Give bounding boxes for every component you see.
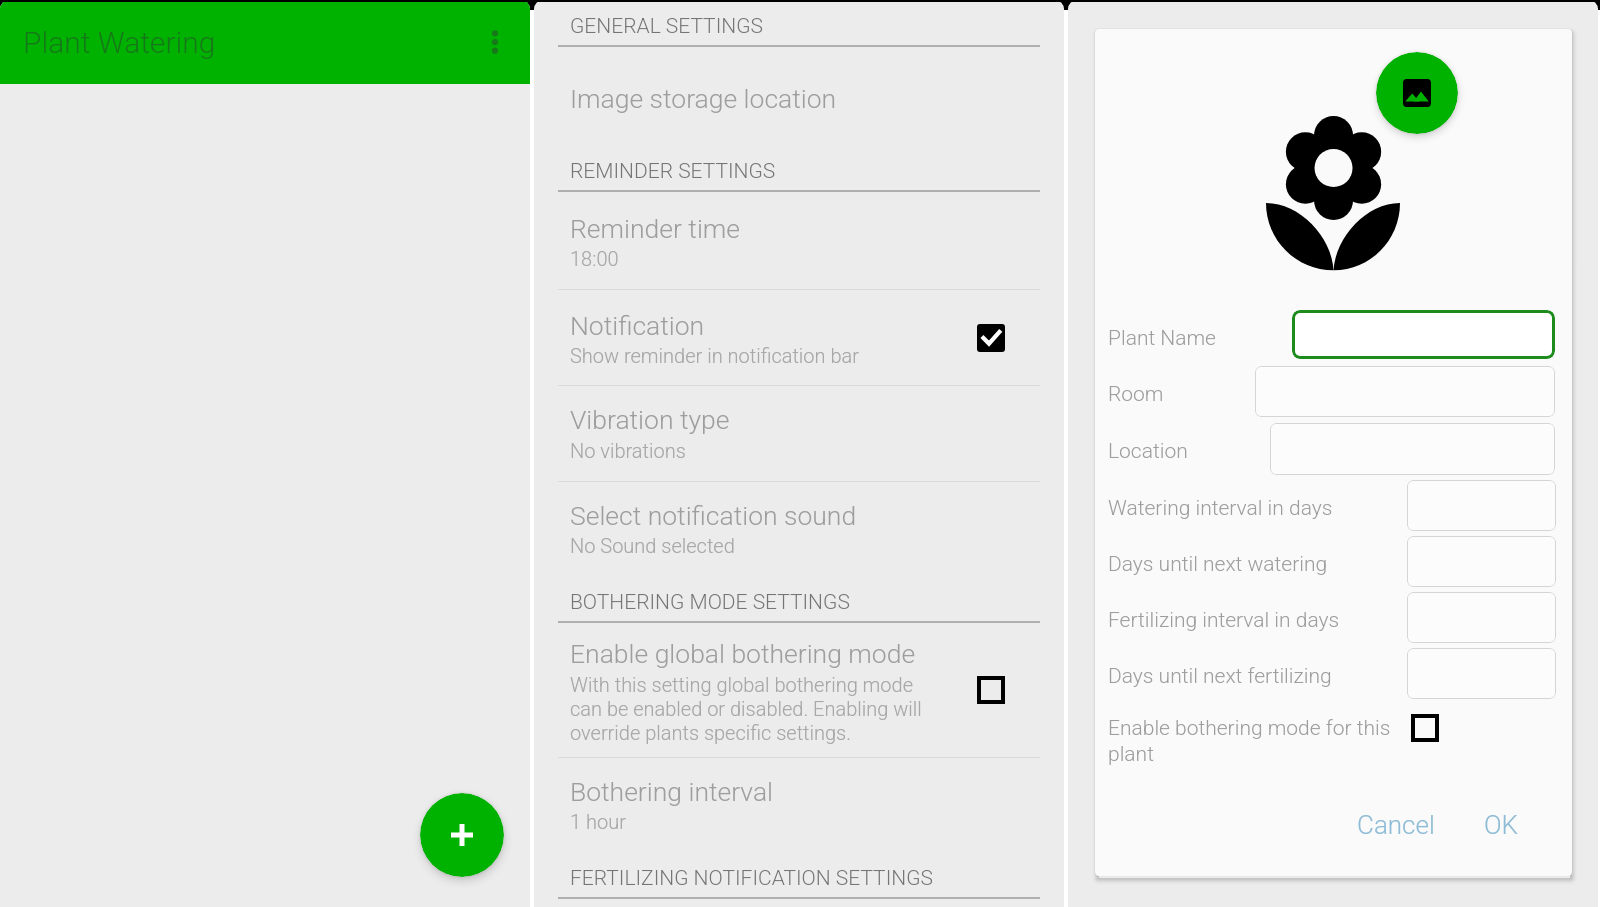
button[interactable]: Select notification sound [534, 482, 1064, 572]
button[interactable]: Bothering interval [534, 758, 1064, 848]
button[interactable]: Vibration type [534, 386, 1064, 481]
staticText: No Sound selected [570, 534, 970, 557]
button[interactable]: Enable bothering mode for this plant [1411, 714, 1439, 742]
staticText: Enable bothering mode for this plant [1108, 716, 1400, 766]
button[interactable]: Days until next watering [1407, 536, 1556, 587]
staticText: REMINDER SETTINGS [570, 159, 776, 184]
button[interactable]: Enable global bothering mode [534, 622, 1064, 757]
staticText: GENERAL SETTINGS [570, 14, 763, 39]
button[interactable]: Reminder time [534, 191, 1064, 289]
button[interactable]: Room [1255, 366, 1555, 417]
staticText: Select notification sound [570, 500, 857, 531]
button[interactable]: Enable global bothering mode [977, 676, 1005, 704]
button[interactable]: Watering interval in days [1407, 480, 1556, 531]
staticText: 1 hour [570, 810, 970, 833]
button[interactable]: Add plant [420, 793, 504, 877]
button[interactable]: Pick image [1376, 52, 1458, 134]
staticText: Cancel [1357, 810, 1435, 840]
staticText: Plant Watering [23, 25, 216, 60]
button[interactable]: Location [1270, 423, 1555, 475]
staticText: Notification [570, 310, 705, 341]
button[interactable]: Notification [977, 324, 1005, 352]
staticText: Bothering interval [570, 776, 774, 807]
staticText: 18:00 [570, 247, 970, 270]
button[interactable]: Plant Watering [0, 0, 530, 84]
button[interactable]: Image storage location [534, 60, 1064, 135]
staticText: Enable global bothering mode [570, 638, 916, 669]
staticText: BOTHERING MODE SETTINGS [570, 590, 850, 615]
button[interactable]: OK [1468, 802, 1535, 848]
staticText: Location [1108, 439, 1263, 464]
staticText: Fertilizing interval in days [1108, 608, 1400, 633]
staticText: Days until next fertilizing [1108, 664, 1400, 689]
button[interactable]: Plant Name [1292, 310, 1555, 359]
staticText: Vibration type [570, 404, 730, 435]
staticText: Image storage location [570, 83, 837, 114]
button[interactable]: Notification [534, 290, 1064, 385]
staticText: With this setting global bothering mode … [570, 673, 930, 745]
staticText: FERTILIZING NOTIFICATION SETTINGS [570, 866, 933, 891]
staticText: No vibrations [570, 439, 970, 462]
staticText: Days until next watering [1108, 552, 1400, 577]
button[interactable]: Cancel [1341, 802, 1451, 848]
staticText: Show reminder in notification bar [570, 344, 970, 367]
button[interactable]: Days until next fertilizing [1407, 648, 1556, 699]
staticText: OK [1484, 810, 1519, 840]
staticText: Watering interval in days [1108, 496, 1400, 521]
staticText: Room [1108, 382, 1248, 407]
button[interactable]: Fertilizing interval in days [1407, 592, 1556, 643]
button[interactable]: More options [471, 18, 519, 66]
staticText: Reminder time [570, 213, 741, 244]
staticText: Plant Name [1108, 326, 1285, 351]
